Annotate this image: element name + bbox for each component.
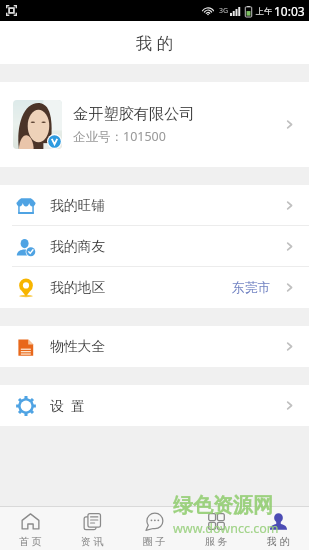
staticText: 设 置 bbox=[50, 396, 85, 415]
staticText: 服 务 bbox=[205, 534, 228, 548]
button[interactable]: 我 的 bbox=[247, 507, 309, 550]
button[interactable]: 首 页 bbox=[0, 507, 61, 550]
staticText: 东莞市 bbox=[232, 280, 271, 296]
staticText: 10:03 bbox=[274, 3, 305, 19]
staticText: 资 讯 bbox=[81, 534, 104, 548]
staticText: 我的地区 bbox=[50, 279, 106, 296]
staticText: 圈 子 bbox=[143, 534, 166, 548]
staticText: 物性大全 bbox=[50, 338, 106, 355]
button[interactable]: 圈 子 bbox=[123, 507, 185, 550]
button[interactable]: 设 置 bbox=[0, 385, 309, 426]
button[interactable]: 我的商友 bbox=[0, 226, 309, 267]
staticText: 上午 bbox=[256, 6, 272, 16]
staticText: 金开塑胶有限公司 bbox=[73, 104, 195, 123]
staticText: www.downcc.com bbox=[173, 520, 279, 537]
staticText: 我的商友 bbox=[50, 238, 106, 255]
staticText: 首 页 bbox=[19, 534, 42, 548]
staticText: 企业号：101500 bbox=[73, 128, 166, 145]
staticText: 我 的 bbox=[136, 31, 174, 54]
button[interactable]: 我的地区 bbox=[0, 267, 309, 308]
button[interactable]: 我的旺铺 bbox=[0, 185, 309, 226]
button[interactable]: 金开塑胶有限公司 bbox=[0, 82, 309, 167]
staticText: 我的旺铺 bbox=[50, 197, 106, 214]
button[interactable]: 服 务 bbox=[185, 507, 247, 550]
button[interactable]: 资 讯 bbox=[61, 507, 123, 550]
staticText: 绿色资源网 bbox=[173, 493, 273, 518]
staticText: 3G bbox=[219, 6, 229, 16]
staticText: 我 的 bbox=[267, 534, 290, 548]
button[interactable]: 物性大全 bbox=[0, 326, 309, 367]
